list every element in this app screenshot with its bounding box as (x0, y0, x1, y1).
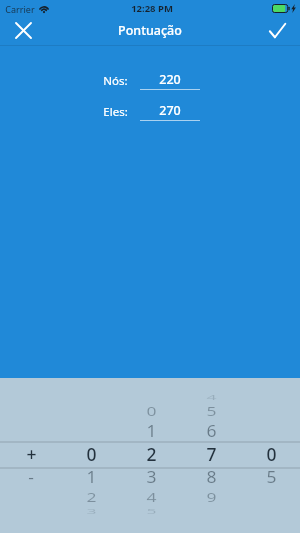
button[interactable]: 4 (181, 391, 241, 403)
staticText: 9 (206, 488, 217, 506)
button[interactable]: 4 (121, 487, 181, 507)
button[interactable]: 8 (181, 464, 241, 490)
staticText: 220 (159, 71, 181, 88)
button[interactable]: 2 (121, 440, 181, 468)
button[interactable]: 7 (181, 440, 241, 468)
staticText: 6 (206, 420, 217, 442)
button[interactable]: 1 (121, 418, 181, 444)
button[interactable]: 5 (241, 464, 300, 490)
staticText: - (28, 466, 34, 488)
staticText: Pontuação (118, 22, 182, 39)
button[interactable]: 0 (61, 440, 121, 468)
button[interactable]: 0 (241, 440, 300, 468)
staticText: Carrier (5, 3, 35, 15)
staticText: Nós: (103, 73, 128, 89)
staticText: 1 (146, 420, 157, 442)
staticText: 8 (206, 466, 217, 488)
staticText: 3 (146, 466, 157, 488)
staticText: 3 (86, 506, 97, 516)
staticText: 4 (146, 488, 157, 506)
staticText: Eles: (103, 104, 128, 120)
staticText: 270 (159, 102, 181, 119)
button[interactable]: 0 (121, 401, 181, 421)
staticText: 5 (206, 402, 217, 420)
button[interactable]: 220 (140, 70, 200, 88)
staticText: 0 (146, 402, 157, 420)
staticText: 2 (86, 488, 97, 506)
button[interactable]: Close (0, 18, 46, 42)
staticText: 0 (266, 442, 277, 466)
staticText: 7 (206, 442, 217, 466)
staticText: 2 (146, 442, 157, 466)
button[interactable]: 9 (181, 487, 241, 507)
button[interactable]: 3 (121, 464, 181, 490)
button[interactable]: 1 (61, 464, 121, 490)
staticText: 12:28 PM (131, 2, 173, 15)
staticText: 5 (266, 466, 277, 488)
button[interactable]: Done (254, 18, 300, 42)
staticText: 5 (146, 506, 157, 516)
staticText: 0 (86, 442, 97, 466)
button[interactable]: 270 (140, 101, 200, 119)
button[interactable]: 5 (181, 401, 241, 421)
staticText: 1 (86, 466, 97, 488)
staticText: 4 (206, 392, 217, 402)
button[interactable]: 2 (61, 487, 121, 507)
staticText: + (26, 442, 37, 466)
button[interactable]: - (1, 464, 61, 490)
button[interactable]: + (1, 440, 61, 468)
button[interactable]: 6 (181, 418, 241, 444)
